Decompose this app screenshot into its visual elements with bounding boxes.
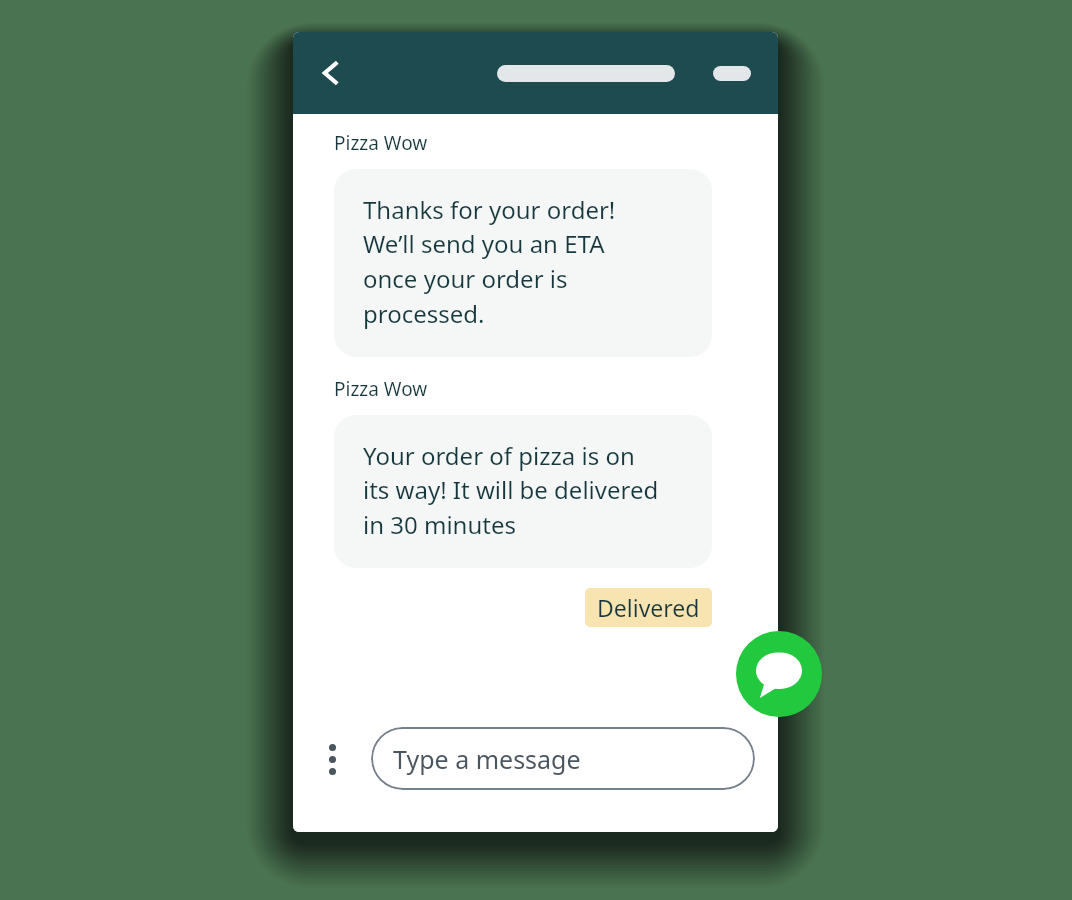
button[interactable]: Delivered — [585, 588, 712, 627]
staticText: Your order of pizza is on its way! It wi… — [363, 439, 659, 542]
staticText: Pizza Wow — [334, 130, 428, 156]
staticText: Pizza Wow — [334, 376, 428, 402]
button[interactable]: Type a message — [371, 727, 755, 790]
button[interactable]: Back — [305, 47, 357, 99]
staticText: Type a message — [393, 742, 581, 776]
button[interactable]: Thanks for your order! We’ll send you an… — [334, 169, 712, 357]
staticText: Thanks for your order! We’ll send you an… — [363, 193, 616, 331]
button[interactable]: More options — [309, 736, 355, 782]
button[interactable]: Open chat — [736, 631, 822, 717]
button[interactable]: Your order of pizza is on its way! It wi… — [334, 415, 712, 568]
staticText: Delivered — [597, 592, 700, 623]
